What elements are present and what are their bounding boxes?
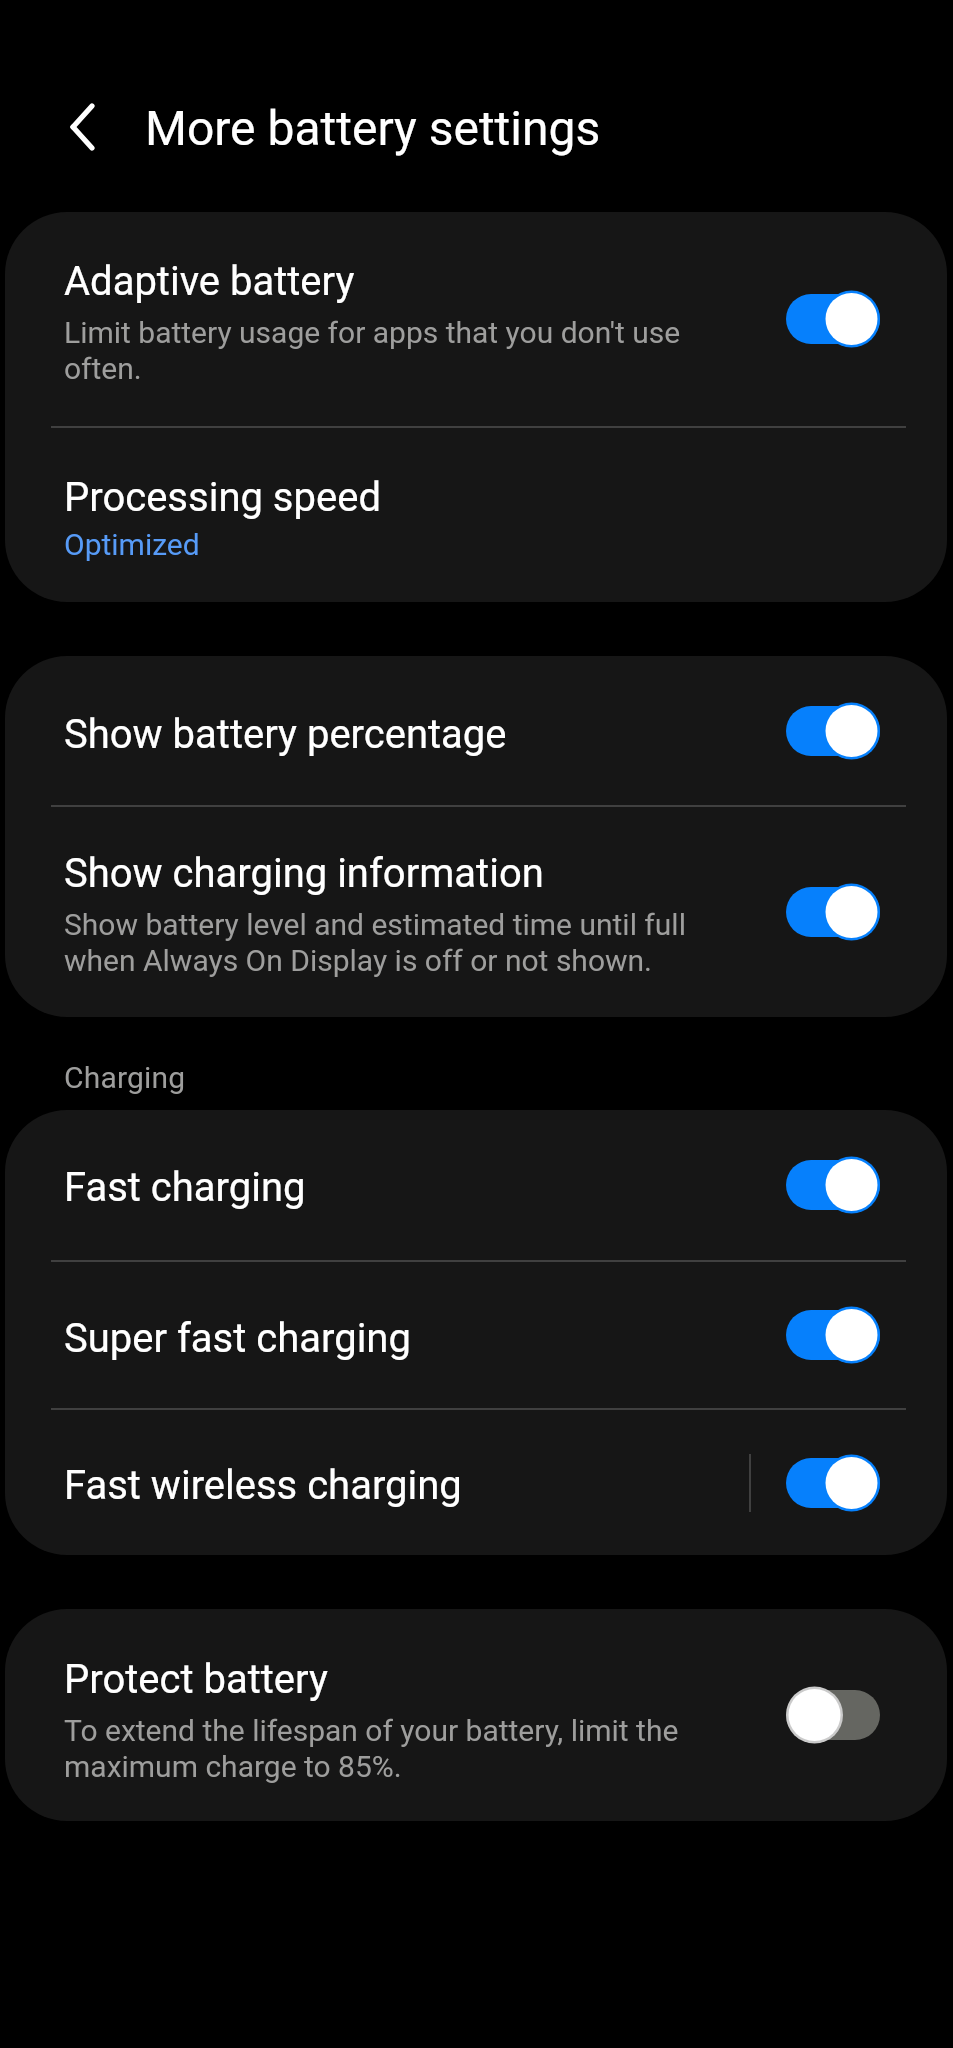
button[interactable]: On <box>786 702 880 760</box>
button[interactable]: Back <box>46 91 118 163</box>
staticText: Charging <box>64 1060 186 1095</box>
button[interactable]: On <box>786 1156 880 1214</box>
button[interactable]: On <box>786 290 880 348</box>
staticText: Show charging information <box>64 850 544 897</box>
button[interactable]: Protect battery <box>5 1609 947 1821</box>
button[interactable]: Adaptive battery <box>5 212 947 426</box>
button[interactable]: Super fast charging <box>5 1262 947 1408</box>
button[interactable]: Off <box>786 1686 880 1744</box>
staticText: Protect battery <box>64 1656 328 1703</box>
staticText: Processing speed <box>64 474 381 521</box>
button[interactable]: Processing speed <box>5 428 947 602</box>
button[interactable]: On <box>786 883 880 941</box>
button[interactable]: Fast wireless charging <box>5 1410 947 1555</box>
button[interactable]: Show charging information <box>5 807 947 1017</box>
staticText: Show battery percentage <box>64 711 507 758</box>
button[interactable]: Fast charging <box>5 1110 947 1260</box>
staticText: Show battery level and estimated time un… <box>64 907 696 978</box>
staticText: Optimized <box>64 527 200 562</box>
staticText: Super fast charging <box>64 1315 411 1362</box>
staticText: To extend the lifespan of your battery, … <box>64 1713 696 1784</box>
button[interactable]: Show battery percentage <box>5 656 947 805</box>
button[interactable]: On <box>786 1306 880 1364</box>
staticText: Limit battery usage for apps that you do… <box>64 315 696 386</box>
staticText: More battery settings <box>145 100 601 156</box>
staticText: Fast charging <box>64 1164 306 1211</box>
button[interactable]: On <box>786 1454 880 1512</box>
staticText: Adaptive battery <box>64 258 355 305</box>
staticText: Fast wireless charging <box>64 1462 462 1509</box>
